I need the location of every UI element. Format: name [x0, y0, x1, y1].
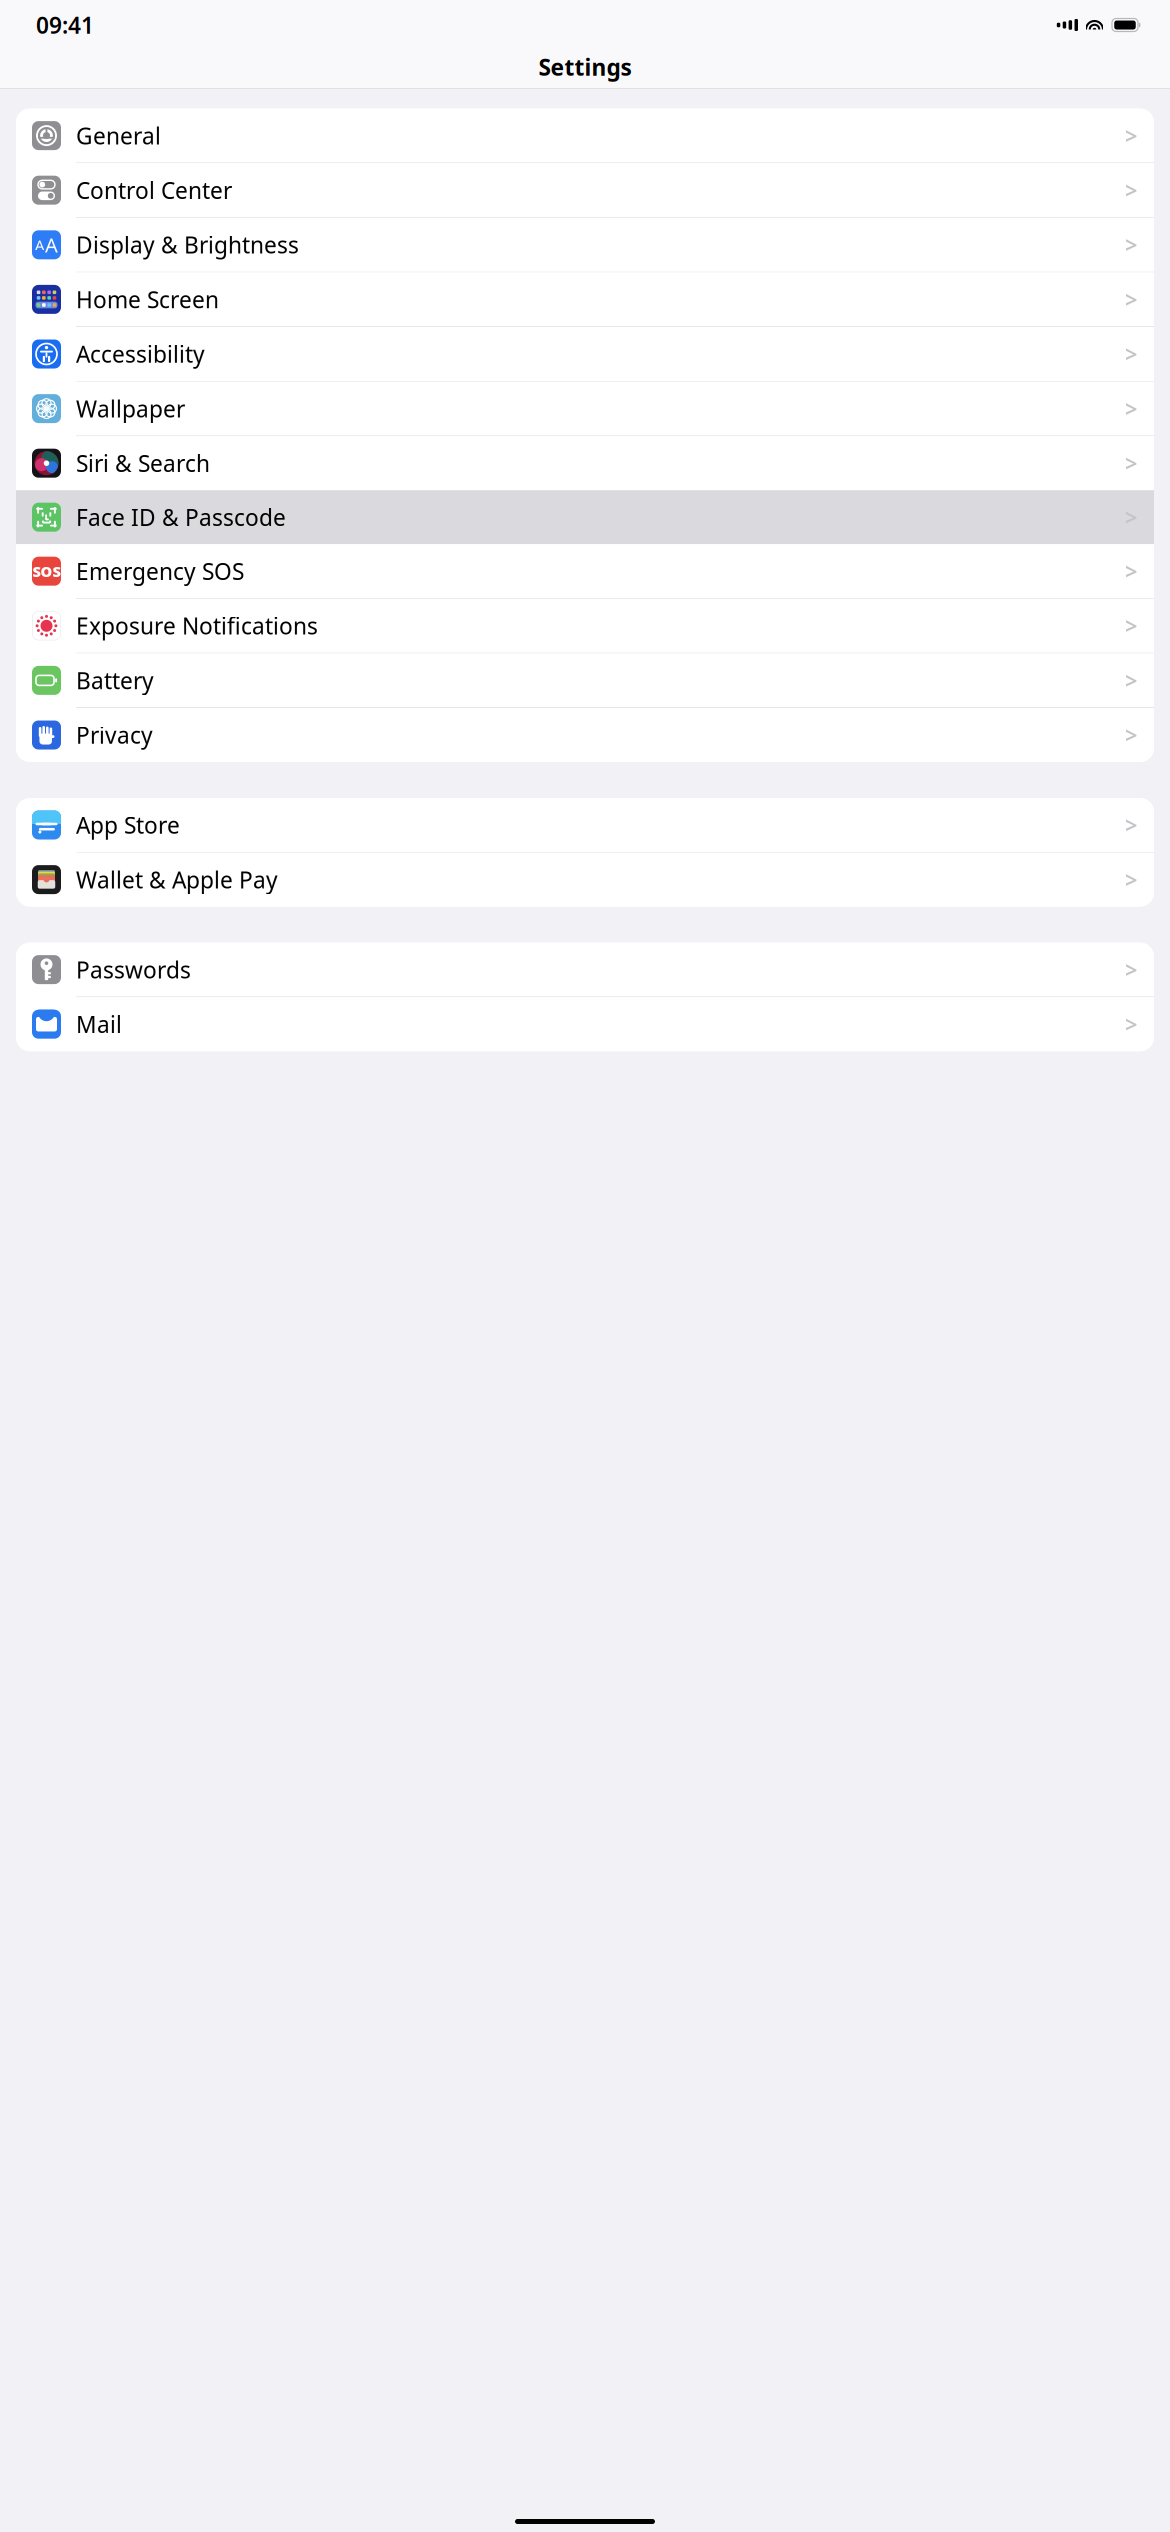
staticText: Face ID & Passcode: [76, 502, 286, 532]
staticText: App Store: [76, 810, 180, 840]
button[interactable]: Privacy: [16, 708, 1154, 762]
staticText: Display & Brightness: [76, 230, 299, 260]
staticText: Exposure Notifications: [76, 611, 318, 641]
staticText: >: [1124, 665, 1137, 695]
staticText: >: [1124, 611, 1137, 641]
staticText: >: [1124, 720, 1137, 750]
staticText: Home Screen: [76, 284, 219, 314]
staticText: Privacy: [76, 720, 153, 750]
staticText: Mail: [76, 1009, 122, 1039]
staticText: General: [76, 120, 161, 151]
button[interactable]: General: [16, 109, 1154, 163]
staticText: Accessibility: [76, 339, 205, 369]
button[interactable]: Face ID & Passcode: [16, 490, 1154, 544]
staticText: Wallet & Apple Pay: [76, 864, 278, 895]
staticText: >: [1124, 175, 1137, 205]
button[interactable]: Accessibility: [16, 327, 1154, 382]
button[interactable]: App Store: [16, 798, 1154, 853]
staticText: >: [1124, 556, 1137, 586]
staticText: A: [35, 235, 44, 255]
button[interactable]: Passwords: [16, 943, 1154, 997]
staticText: >: [1124, 502, 1137, 532]
button[interactable]: Exposure Notifications: [16, 599, 1154, 653]
staticText: >: [1124, 339, 1137, 369]
staticText: >: [1124, 448, 1137, 478]
staticText: >: [1124, 1009, 1137, 1039]
staticText: Settings: [538, 52, 631, 82]
staticText: >: [1124, 954, 1137, 985]
button[interactable]: Wallet & Apple Pay: [16, 853, 1154, 907]
staticText: >: [1124, 393, 1137, 424]
staticText: 09:41: [36, 10, 94, 40]
button[interactable]: Siri & Search: [16, 436, 1154, 490]
staticText: >: [1124, 230, 1137, 260]
staticText: Control Center: [76, 175, 232, 205]
staticText: >: [1124, 864, 1137, 895]
button[interactable]: Mail: [16, 997, 1154, 1051]
staticText: Emergency SOS: [76, 556, 244, 586]
button[interactable]: A: [16, 218, 1154, 272]
button[interactable]: SOS: [16, 544, 1154, 599]
staticText: Wallpaper: [76, 393, 185, 424]
staticText: Passwords: [76, 954, 191, 985]
staticText: A: [45, 231, 58, 258]
button[interactable]: Wallpaper: [16, 382, 1154, 436]
staticText: >: [1124, 284, 1137, 314]
staticText: >: [1124, 810, 1137, 840]
staticText: Siri & Search: [76, 448, 210, 478]
staticText: >: [1124, 120, 1137, 151]
staticText: Battery: [76, 665, 154, 695]
button[interactable]: Battery: [16, 653, 1154, 708]
button[interactable]: Control Center: [16, 163, 1154, 218]
staticText: SOS: [32, 561, 60, 581]
button[interactable]: Home Screen: [16, 272, 1154, 327]
